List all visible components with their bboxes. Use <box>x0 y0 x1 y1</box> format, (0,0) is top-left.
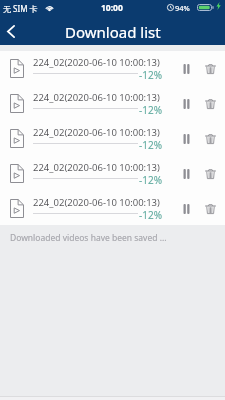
button[interactable]: Pause <box>177 129 196 148</box>
staticText: -12% <box>139 138 162 152</box>
button[interactable]: 224_02(2020-06-10 10:00:13) <box>0 51 225 86</box>
staticText: 224_02(2020-06-10 10:00:13) <box>33 161 160 174</box>
staticText: 224_02(2020-06-10 10:00:13) <box>33 126 160 139</box>
button[interactable]: Delete <box>201 199 220 218</box>
staticText: 无 SIM 卡 <box>3 3 38 14</box>
staticText: 94% <box>175 3 190 13</box>
button[interactable]: 224_02(2020-06-10 10:00:13) <box>0 191 225 225</box>
button[interactable]: 224_02(2020-06-10 10:00:13) <box>0 86 225 121</box>
staticText: 10:00 <box>101 2 123 14</box>
button[interactable]: Delete <box>201 94 220 113</box>
button[interactable]: Delete <box>201 164 220 183</box>
staticText: Download list <box>65 22 161 42</box>
button[interactable]: 224_02(2020-06-10 10:00:13) <box>0 156 225 191</box>
staticText: -12% <box>139 208 162 222</box>
button[interactable]: Pause <box>177 199 196 218</box>
button[interactable]: Delete <box>201 129 220 148</box>
staticText: -12% <box>139 173 162 187</box>
button[interactable]: Pause <box>177 164 196 183</box>
staticText: -12% <box>139 103 162 117</box>
staticText: 224_02(2020-06-10 10:00:13) <box>33 91 160 104</box>
button[interactable]: Pause <box>177 59 196 78</box>
button[interactable]: Delete <box>201 59 220 78</box>
staticText: 224_02(2020-06-10 10:00:13) <box>33 56 160 69</box>
button[interactable]: Pause <box>177 94 196 113</box>
staticText: 224_02(2020-06-10 10:00:13) <box>33 196 160 209</box>
staticText: -12% <box>139 68 162 82</box>
button[interactable]: 224_02(2020-06-10 10:00:13) <box>0 121 225 156</box>
button[interactable]: Back <box>0 17 22 45</box>
staticText: Downloaded videos have been saved ... <box>10 232 167 244</box>
